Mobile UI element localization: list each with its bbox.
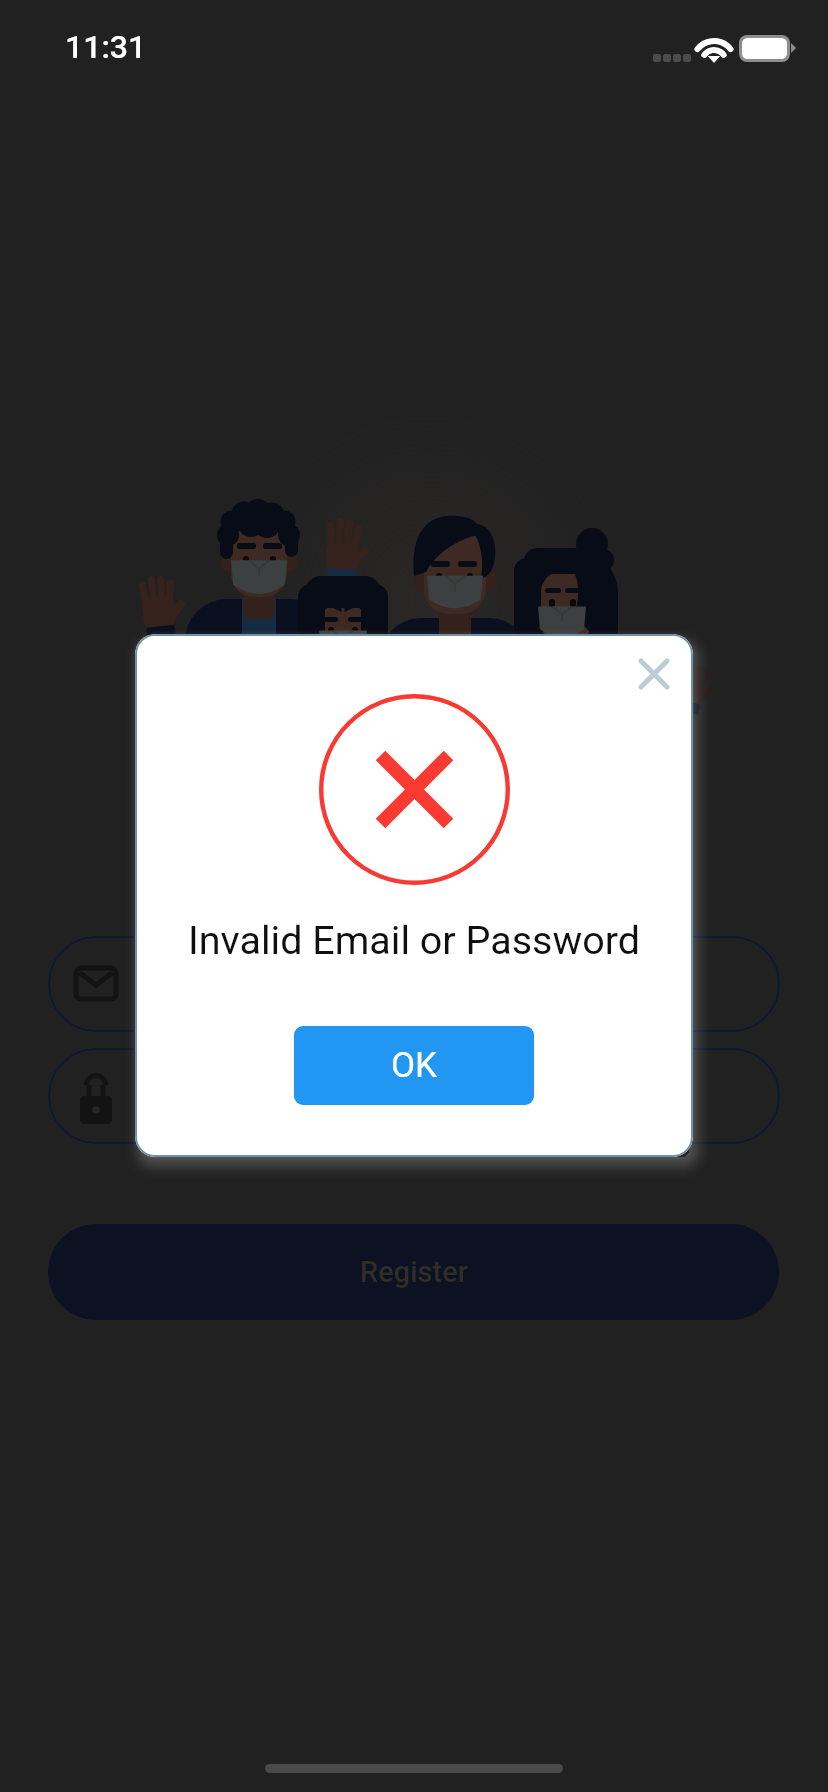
button[interactable]: OK [294,1026,534,1105]
staticText: 11:31 [65,28,147,66]
staticText: OK [391,1045,438,1086]
button[interactable]: Close dialog [620,640,688,708]
staticText: Register [360,1255,468,1289]
button[interactable]: Email address field [48,936,780,1032]
button[interactable]: Password field [48,1048,780,1144]
staticText: Invalid Email or Password [188,917,640,963]
button[interactable]: Register [48,1224,779,1320]
